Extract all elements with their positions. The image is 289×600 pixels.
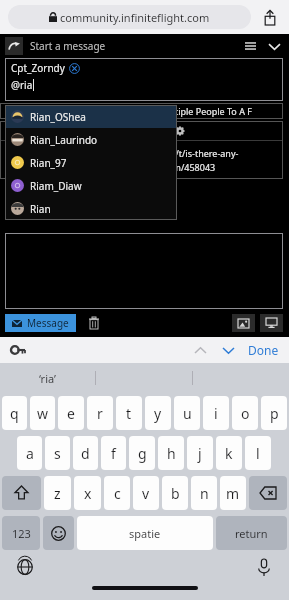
staticText: 123 [12, 526, 31, 541]
staticText: Rian_Laurindo [30, 133, 98, 147]
button[interactable]: Emoji [43, 516, 74, 550]
button[interactable]: 123 [2, 516, 40, 550]
button[interactable]: w [30, 396, 55, 430]
staticText: return [235, 526, 268, 541]
staticText: ‘ria’ [39, 371, 56, 386]
staticText: Rian_OShea [30, 110, 86, 124]
staticText: spatie [129, 526, 161, 541]
button[interactable]: Share [259, 6, 281, 28]
button[interactable]: Dictate [253, 556, 275, 578]
button[interactable]: e [58, 396, 84, 430]
button[interactable]: Shift [2, 476, 41, 510]
staticText: Rian_97 [30, 156, 67, 170]
button[interactable]: p [261, 396, 287, 430]
button[interactable]: Insert image [232, 314, 255, 332]
staticText: y [154, 404, 162, 423]
button[interactable]: Backspace [249, 476, 287, 510]
button[interactable]: q [2, 396, 27, 430]
staticText: h [167, 444, 176, 463]
button[interactable]: Riam_Diaw [5, 174, 177, 197]
staticText: l [256, 444, 260, 463]
staticText: a [26, 444, 34, 463]
staticText: g [138, 444, 147, 463]
button[interactable]: Previous field [190, 340, 210, 360]
button[interactable]: Remove recipient [69, 63, 80, 74]
button[interactable]: m [220, 476, 246, 510]
staticText: e [67, 404, 75, 423]
staticText: n [200, 484, 209, 503]
button[interactable]: Delete draft [85, 314, 103, 332]
button[interactable]: Menu [241, 37, 259, 55]
button[interactable]: h [158, 436, 184, 470]
staticText: t [126, 404, 132, 423]
button[interactable]: Rian_OShea [5, 105, 177, 128]
staticText: @ria [11, 78, 33, 92]
staticText: Start a message [30, 39, 106, 53]
button[interactable]: v [133, 476, 159, 510]
button[interactable]: y [145, 396, 171, 430]
button[interactable]: c [104, 476, 130, 510]
button[interactable]: Change keyboard [14, 556, 36, 578]
staticText: f [111, 444, 116, 463]
button[interactable]: Collapse [265, 37, 283, 55]
staticText: p [270, 404, 279, 423]
staticText: Cpt_Zorndy [11, 61, 65, 75]
button[interactable]: Preview [260, 314, 283, 332]
staticText: v [142, 484, 150, 503]
staticText: ultiple People To A F [167, 105, 252, 117]
button[interactable]: g [129, 436, 155, 470]
staticText: Rian [30, 202, 51, 216]
staticText: Message [27, 316, 69, 330]
button[interactable]: i [203, 396, 229, 430]
staticText: i [167, 125, 170, 137]
button[interactable]: z [44, 476, 71, 510]
button[interactable]: ‘ria’ [0, 363, 95, 393]
staticText: u [183, 404, 192, 423]
button[interactable]: l [245, 436, 271, 470]
staticText: pm/458043 [167, 161, 216, 173]
button[interactable]: k [216, 436, 242, 470]
button[interactable]: Next field [218, 340, 238, 360]
staticText: k [225, 444, 233, 463]
staticText: d [81, 444, 90, 463]
staticText: o [241, 404, 250, 423]
button[interactable]: x [74, 476, 101, 510]
button[interactable]: Rian_Laurindo [5, 128, 177, 151]
button[interactable]: Passwords [8, 340, 28, 360]
button[interactable]: community.infiniteflight.com [8, 5, 251, 29]
staticText: x [84, 484, 92, 503]
staticText: s [54, 444, 61, 463]
button[interactable]: n [191, 476, 217, 510]
button[interactable]: return [216, 516, 287, 550]
staticText: m [226, 484, 240, 503]
button[interactable]: Reply [5, 37, 23, 55]
button[interactable]: j [187, 436, 213, 470]
staticText: community.infiniteflight.com [60, 10, 210, 25]
button[interactable]: t [116, 396, 142, 430]
staticText: Done [248, 342, 279, 358]
staticText: c [114, 484, 121, 503]
button[interactable]: d [73, 436, 98, 470]
staticText: i [214, 404, 218, 423]
staticText: m/t/is-there-any- [167, 147, 239, 159]
staticText: q [10, 404, 19, 423]
button[interactable]: a [17, 436, 42, 470]
staticText: z [54, 484, 61, 503]
button[interactable]: f [101, 436, 126, 470]
button[interactable]: s [45, 436, 70, 470]
button[interactable]: o [232, 396, 258, 430]
button[interactable]: Message [5, 314, 76, 332]
button[interactable]: Rian [5, 197, 177, 220]
staticText: w [37, 404, 49, 423]
button[interactable]: u [174, 396, 200, 430]
staticText: Riam_Diaw [30, 179, 82, 193]
button[interactable]: Done [246, 342, 281, 358]
staticText: r [97, 404, 103, 423]
button[interactable]: spatie [77, 516, 213, 550]
button[interactable]: Rian_97 [5, 151, 177, 174]
button[interactable]: r [87, 396, 113, 430]
button[interactable]: b [162, 476, 188, 510]
staticText: j [198, 444, 202, 463]
